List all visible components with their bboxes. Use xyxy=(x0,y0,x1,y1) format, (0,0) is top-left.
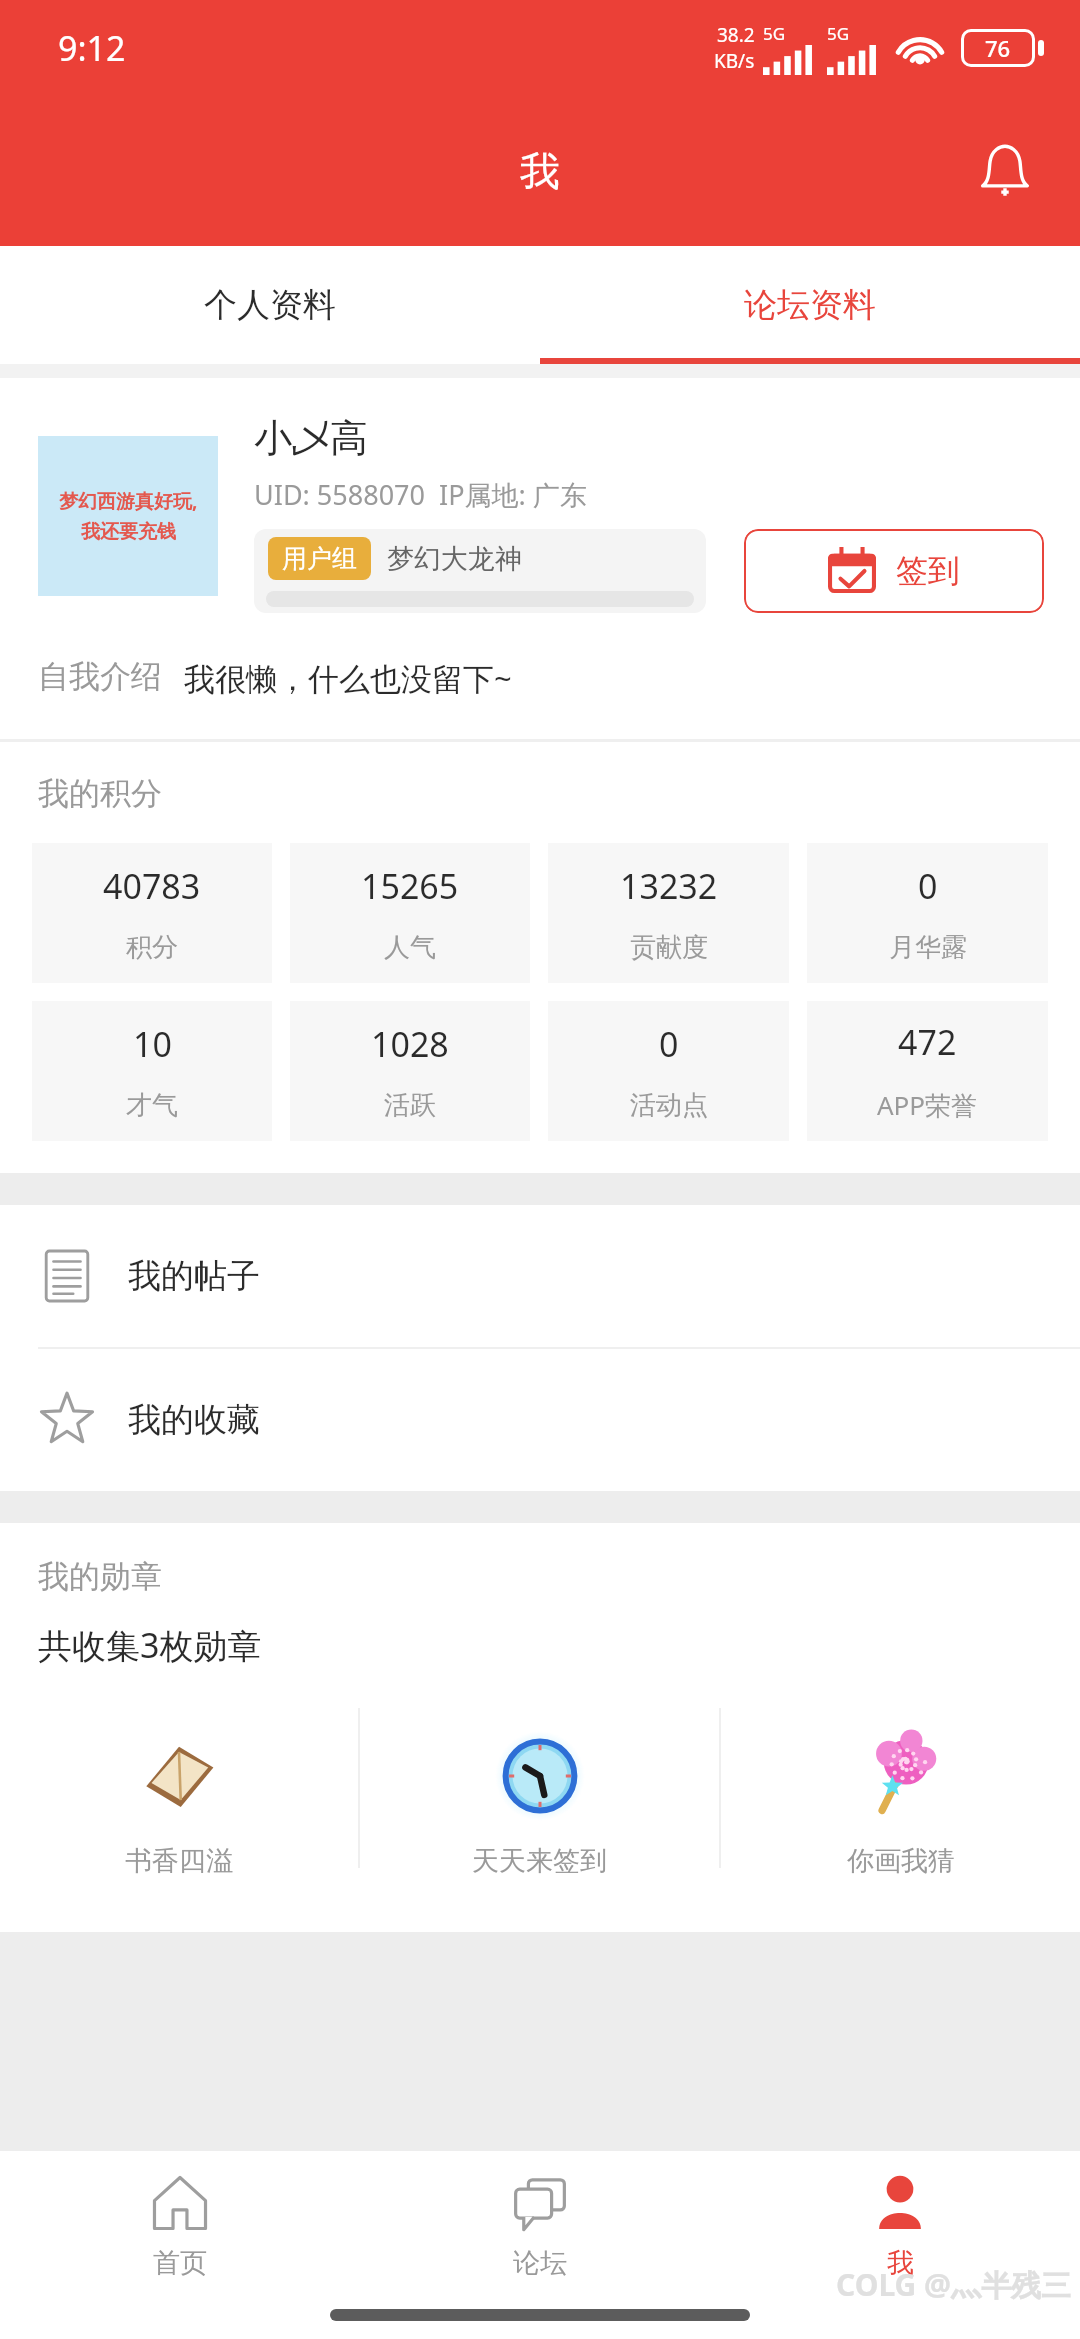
button[interactable]: 我的收藏 xyxy=(0,1349,1080,1491)
staticText: 我 xyxy=(887,2246,914,2280)
staticText: 0 xyxy=(918,863,938,909)
staticText: 论坛 xyxy=(513,2246,567,2280)
staticText: 签到 xyxy=(896,551,960,591)
staticText: 我很懒，什么也没留下~ xyxy=(184,657,512,699)
staticText: 我的积分 xyxy=(38,774,162,813)
button[interactable]: 书香四溢 xyxy=(0,1708,358,1898)
button[interactable]: 我的帖子 xyxy=(0,1205,1080,1347)
button[interactable]: 10 xyxy=(32,1001,272,1141)
staticText: 小乄高 xyxy=(254,414,368,462)
staticText: 共收集3枚勋章 xyxy=(38,1622,262,1668)
staticText: 5G xyxy=(763,22,786,45)
staticText: 5G xyxy=(827,22,850,45)
staticText: 自我介绍 xyxy=(38,657,162,696)
staticText: 15265 xyxy=(361,863,459,909)
staticText: 论坛资料 xyxy=(744,284,876,326)
staticText: 0 xyxy=(659,1021,679,1067)
staticText: COLG @灬半残三 xyxy=(836,2264,1072,2305)
staticText: 个人资料 xyxy=(204,284,336,326)
staticText: 76 xyxy=(985,33,1011,63)
button[interactable]: 472 xyxy=(807,1001,1048,1141)
staticText: 用户组 xyxy=(282,543,357,574)
staticText: 13232 xyxy=(620,863,718,909)
button[interactable]: 签到 xyxy=(744,529,1044,613)
staticText: 你画我猜 xyxy=(847,1844,955,1878)
button[interactable]: 天天来签到 xyxy=(360,1708,719,1898)
staticText: 40783 xyxy=(103,863,201,909)
button[interactable]: 论坛资料 xyxy=(540,246,1080,364)
button[interactable]: 你画我猜 xyxy=(721,1708,1080,1898)
staticText: 活动点 xyxy=(630,1089,708,1122)
button[interactable]: 论坛 xyxy=(360,2151,720,2301)
staticText: 我的帖子 xyxy=(128,1255,260,1297)
staticText: 书香四溢 xyxy=(125,1844,233,1878)
staticText: 我的勋章 xyxy=(38,1557,162,1596)
button[interactable]: 首页 xyxy=(0,2151,360,2301)
button[interactable]: 40783 xyxy=(32,843,272,983)
staticText: 贡献度 xyxy=(630,931,708,964)
staticText: KB/s xyxy=(714,48,755,74)
staticText: 472 xyxy=(898,1019,957,1065)
staticText: 才气 xyxy=(126,1089,178,1122)
button[interactable]: 梦幻西游真好玩, xyxy=(38,436,218,596)
staticText: 10 xyxy=(133,1021,172,1067)
staticText: 天天来签到 xyxy=(472,1844,607,1878)
staticText: UID: 5588070 IP属地: 广东 xyxy=(254,476,587,513)
button[interactable]: 个人资料 xyxy=(0,246,540,364)
staticText: 我还要充钱 xyxy=(81,520,176,544)
button[interactable]: Notifications xyxy=(960,126,1050,216)
staticText: 38.2 xyxy=(717,22,755,48)
staticText: 活跃 xyxy=(384,1089,436,1122)
button[interactable]: 15265 xyxy=(290,843,530,983)
button[interactable]: 0 xyxy=(807,843,1048,983)
button[interactable]: 我 xyxy=(720,2151,1080,2301)
button[interactable]: 13232 xyxy=(548,843,789,983)
staticText: 1028 xyxy=(371,1021,449,1067)
staticText: 9:12 xyxy=(58,25,126,71)
staticText: 积分 xyxy=(126,931,178,964)
staticText: APP荣誉 xyxy=(877,1087,978,1123)
button[interactable]: 1028 xyxy=(290,1001,530,1141)
staticText: 我 xyxy=(520,146,560,196)
staticText: 我的收藏 xyxy=(128,1399,260,1441)
button[interactable]: 0 xyxy=(548,1001,789,1141)
staticText: 月华露 xyxy=(889,931,967,964)
staticText: 梦幻大龙神 xyxy=(387,542,522,576)
button[interactable]: 用户组 xyxy=(254,529,706,613)
staticText: 梦幻西游真好玩, xyxy=(59,488,198,514)
staticText: 人气 xyxy=(384,931,436,964)
staticText: 首页 xyxy=(153,2246,207,2280)
